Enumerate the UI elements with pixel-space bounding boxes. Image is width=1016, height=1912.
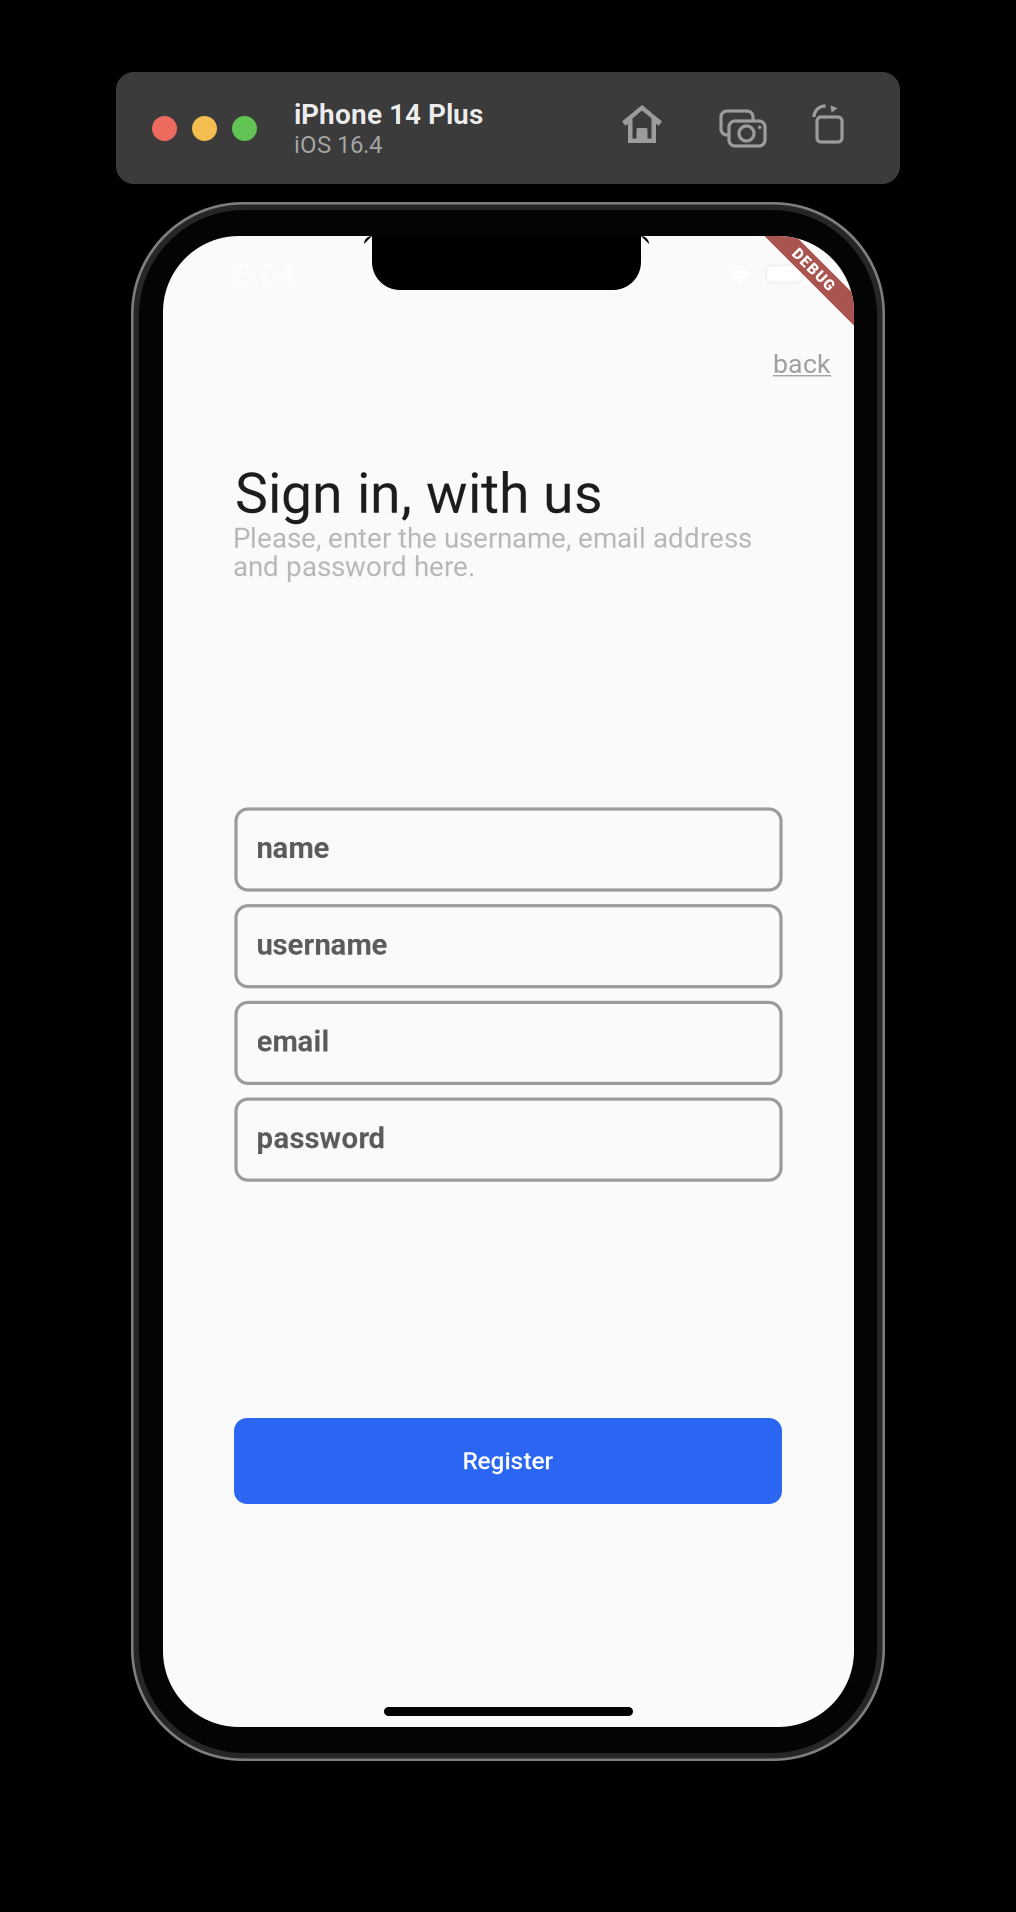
button[interactable]: Screenshot xyxy=(717,106,761,141)
staticText: iPhone 14 Plus xyxy=(294,98,483,131)
button[interactable]: name xyxy=(236,809,781,890)
button[interactable]: password xyxy=(236,1099,781,1180)
staticText: email xyxy=(256,1024,329,1059)
button[interactable]: back xyxy=(762,346,842,382)
button[interactable]: Minimise xyxy=(192,116,217,141)
button[interactable]: Close xyxy=(152,116,177,141)
button[interactable]: Register xyxy=(234,1418,782,1504)
button[interactable]: Home xyxy=(622,105,662,143)
staticText: name xyxy=(256,831,329,865)
staticText: Register xyxy=(462,1447,553,1475)
staticText: Please, enter the username, email addres… xyxy=(233,522,752,583)
staticText: back xyxy=(773,348,831,380)
staticText: username xyxy=(256,927,387,962)
button[interactable]: Rotate xyxy=(809,105,842,142)
button[interactable]: username xyxy=(236,906,781,987)
staticText: iOS 16.4 xyxy=(294,131,382,159)
button[interactable]: email xyxy=(236,1002,781,1083)
staticText: password xyxy=(256,1121,385,1155)
button[interactable]: Zoom xyxy=(232,116,257,141)
staticText: DEBUG xyxy=(785,264,838,282)
staticText: Sign in, with us xyxy=(235,461,603,526)
